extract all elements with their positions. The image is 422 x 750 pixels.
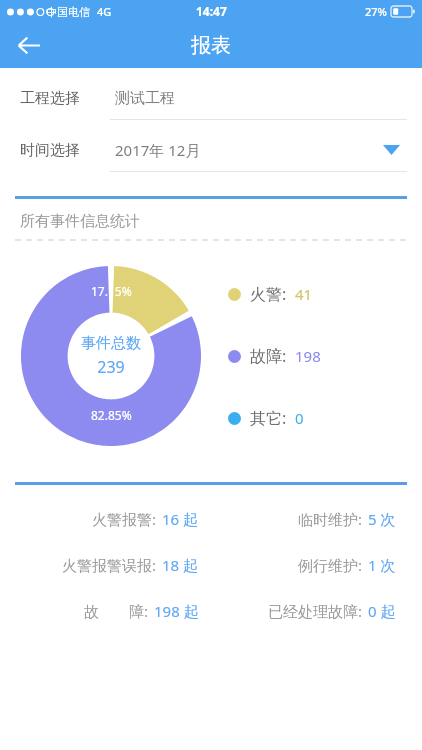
button[interactable]: 已经处理故障: (211, 588, 396, 634)
staticText: 82.85% (91, 407, 132, 423)
staticText: 中国电信 (46, 5, 90, 19)
staticText: 已经处理故障: (268, 601, 363, 621)
staticText: 临时维护: (298, 509, 363, 529)
button[interactable]: 其它: (228, 407, 304, 429)
staticText: 火警报警误报: (62, 555, 157, 575)
staticText: 测试工程 (115, 89, 175, 108)
staticText: 其它: (250, 407, 287, 429)
button[interactable]: 工程选择 (0, 76, 422, 120)
staticText: 0 起 (368, 601, 396, 621)
staticText: 2017年 12月 (115, 140, 201, 160)
staticText: 1 次 (368, 555, 396, 575)
staticText: 故 障: (84, 601, 149, 621)
staticText: 所有事件信息统计 (20, 212, 140, 231)
staticText: 27% (365, 4, 387, 19)
staticText: 5 次 (368, 509, 396, 529)
staticText: 0 (295, 408, 304, 428)
button[interactable]: 故 障: (0, 588, 199, 634)
button[interactable]: 例行维护: (211, 542, 396, 588)
staticText: 时间选择 (20, 141, 80, 160)
staticText: 17.15% (91, 283, 132, 299)
button[interactable]: 火警: (228, 283, 313, 305)
staticText: 14:47 (196, 3, 227, 19)
button[interactable]: 故障: (228, 345, 321, 367)
staticText: 工程选择 (20, 89, 80, 108)
staticText: 报表 (191, 33, 231, 58)
staticText: 239 (97, 356, 125, 378)
staticText: 16 起 (162, 509, 199, 529)
button[interactable]: 火警报警误报: (0, 542, 199, 588)
staticText: 18 起 (162, 555, 199, 575)
staticText: 41 (295, 284, 313, 304)
button[interactable]: 火警报警: (0, 496, 199, 542)
staticText: 198 (295, 346, 321, 366)
button[interactable]: Back (6, 23, 50, 67)
button[interactable]: 临时维护: (211, 496, 396, 542)
button[interactable]: 时间选择 (0, 128, 422, 172)
staticText: 火警报警: (92, 509, 157, 529)
staticText: 4G (97, 4, 112, 19)
staticText: 198 起 (154, 601, 199, 621)
staticText: 例行维护: (298, 555, 363, 575)
staticText: 火警: (250, 283, 287, 305)
staticText: 事件总数 (81, 334, 141, 353)
staticText: 故障: (250, 345, 287, 367)
